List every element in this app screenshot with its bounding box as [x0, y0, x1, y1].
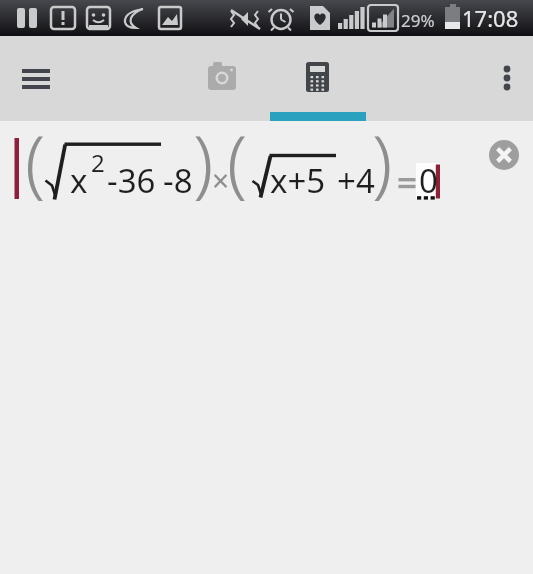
staticText: -8	[163, 158, 193, 203]
staticText: +4	[337, 158, 375, 203]
staticText: 0	[419, 158, 438, 203]
staticText: (	[25, 111, 46, 210]
staticText: ×	[212, 160, 230, 201]
button[interactable]	[12, 62, 60, 106]
staticText: 17:08	[462, 3, 519, 33]
staticText: )	[372, 111, 393, 210]
button[interactable]	[489, 140, 519, 170]
staticText: x+5	[270, 158, 326, 203]
button[interactable]	[174, 36, 270, 121]
button[interactable]	[270, 36, 366, 121]
button[interactable]	[487, 62, 527, 106]
staticText: -36	[107, 158, 156, 203]
staticText: x	[70, 158, 88, 203]
staticText: )	[193, 111, 214, 210]
staticText: 29%	[401, 9, 435, 32]
staticText: 2	[91, 146, 105, 179]
staticText: (	[227, 111, 248, 210]
